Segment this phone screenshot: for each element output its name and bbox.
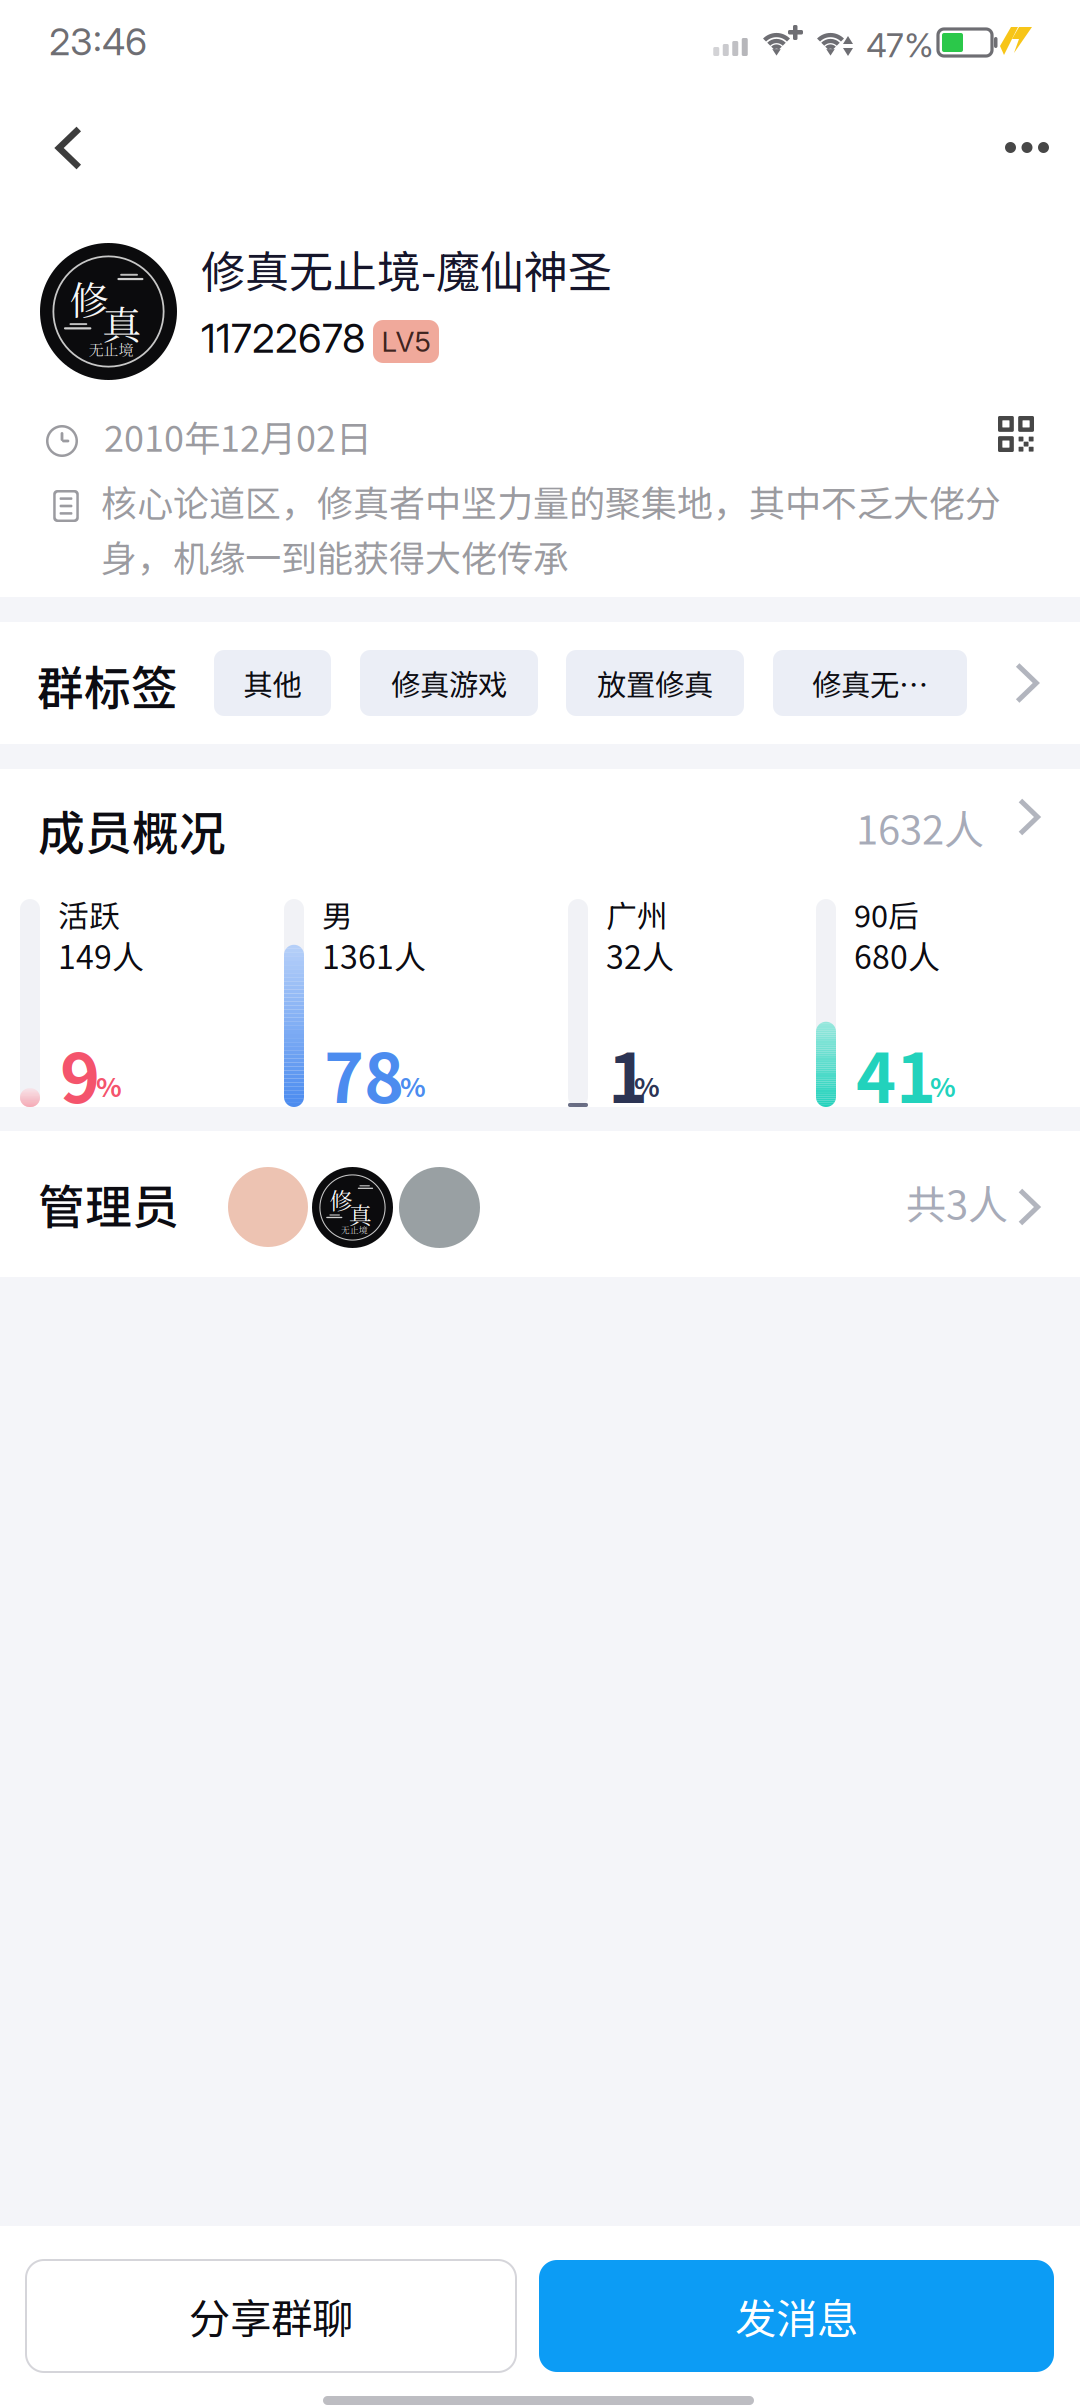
button[interactable]: Back	[0, 90, 108, 206]
staticText: 修	[329, 1183, 352, 1216]
staticText: 无止境	[341, 1223, 368, 1236]
staticText: 发消息	[735, 2286, 858, 2346]
staticText: 分享群聊	[189, 2286, 353, 2346]
button[interactable]: 分享群聊	[26, 2260, 516, 2372]
staticText: 群标签	[37, 651, 178, 719]
staticText: 32人	[606, 932, 674, 978]
staticText: 修真游戏	[391, 662, 507, 704]
staticText: 真	[349, 1197, 372, 1231]
staticText: 其他	[243, 662, 301, 704]
staticText: LV5	[381, 325, 430, 358]
button[interactable]: 修真游戏	[360, 650, 538, 716]
staticText: 活跃	[58, 892, 120, 936]
staticText: 成员概况	[38, 796, 226, 864]
staticText: 78	[324, 1024, 404, 1122]
staticText: 修真无止境-魔仙神圣	[201, 237, 612, 301]
staticText: %	[96, 1066, 122, 1105]
staticText: 身，机缘一到能获得大佬传承	[101, 530, 569, 582]
button[interactable]: 放置修真	[566, 650, 744, 716]
staticText: 90后	[854, 892, 919, 936]
staticText: 广州	[606, 892, 668, 936]
staticText: %	[634, 1066, 660, 1105]
button[interactable]: 管理员	[0, 1131, 1080, 1277]
button[interactable]: 其他	[214, 650, 331, 716]
staticText: 修	[69, 270, 108, 326]
staticText: 无止境	[89, 338, 134, 360]
staticText: 真	[102, 294, 141, 351]
staticText: %	[400, 1066, 426, 1105]
button[interactable]: Group QR code	[984, 402, 1048, 466]
staticText: 9	[60, 1024, 100, 1122]
staticText: 23:46	[49, 19, 147, 64]
staticText: 2010年12月02日	[104, 410, 372, 462]
staticText: 41	[856, 1024, 936, 1122]
button[interactable]: 成员概况	[0, 769, 1080, 859]
button[interactable]: 修真无…	[773, 650, 967, 716]
button[interactable]: 发消息	[539, 2260, 1054, 2372]
staticText: 核心论道区，修真者中坚力量的聚集地，其中不乏大佬分	[101, 475, 1001, 527]
staticText: 11722678	[201, 314, 365, 362]
button[interactable]: More tags	[1005, 657, 1049, 709]
staticText: 1361人	[322, 932, 426, 978]
staticText: 男	[322, 892, 353, 936]
staticText: 1632人	[856, 798, 984, 856]
button[interactable]: More options	[972, 90, 1080, 206]
staticText: 47%	[866, 25, 934, 65]
staticText: 放置修真	[597, 662, 713, 704]
staticText: 共3人	[906, 1173, 1008, 1231]
staticText: 管理员	[38, 1170, 179, 1238]
staticText: 149人	[58, 932, 144, 978]
staticText: 1	[608, 1024, 648, 1122]
staticText: 修真无…	[812, 662, 928, 704]
staticText: 680人	[854, 932, 940, 978]
staticText: %	[930, 1066, 956, 1105]
